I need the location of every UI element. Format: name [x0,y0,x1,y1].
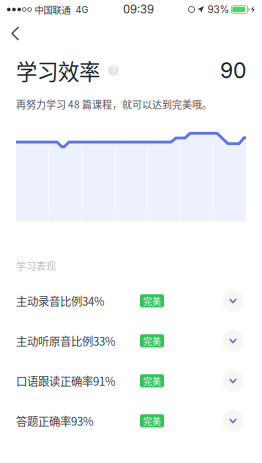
staticText: 完美 [143,374,161,387]
staticText: 再努力学习 48 篇课程，就可以达到完美哦。 [16,97,212,111]
button[interactable]: 答题正确率93% [0,401,262,441]
staticText: 答题正确率93% [16,413,93,429]
staticText: 完美 [143,334,161,347]
staticText: 完美 [143,294,161,307]
staticText: 主动录音比例34% [16,293,104,309]
staticText: 中国联通 [34,3,70,16]
staticText: 93% [207,3,229,16]
button[interactable]: 口语跟读正确率91% [0,361,262,401]
staticText: 口语跟读正确率91% [16,373,115,389]
staticText: 学习效率 [16,55,100,86]
staticText: ? [111,64,116,77]
staticText: 完美 [143,414,161,427]
staticText: 主动听原音比例33% [16,333,115,349]
staticText: 90 [220,57,246,83]
staticText: 学习表现 [16,258,56,273]
button[interactable]: Back [0,19,35,48]
button[interactable]: 主动录音比例34% [0,281,262,321]
staticText: 09:39 [123,3,154,16]
staticText: 4G [75,4,88,15]
button[interactable]: 主动听原音比例33% [0,321,262,361]
